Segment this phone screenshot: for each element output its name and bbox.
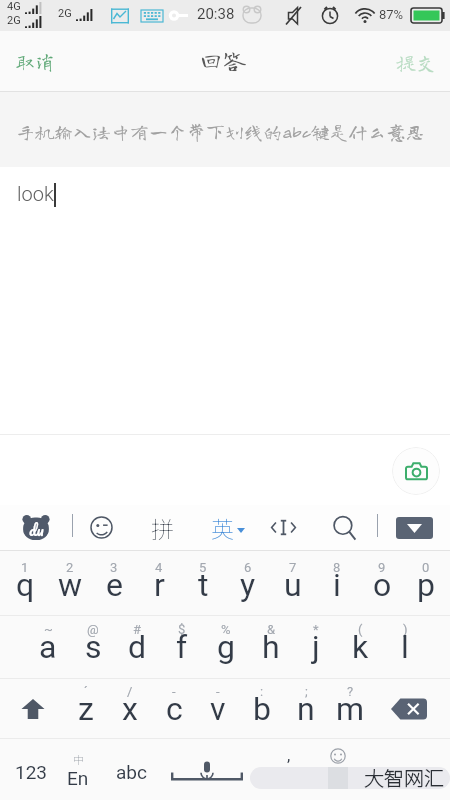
button[interactable]: Emoji [79, 505, 123, 550]
staticText: h [262, 628, 280, 666]
staticText: b [253, 690, 271, 728]
button[interactable]: % [204, 616, 248, 678]
staticText: 大智网汇 [364, 763, 444, 792]
button[interactable]: 2 [48, 551, 92, 615]
button[interactable]: ; [284, 679, 328, 738]
staticText: - [216, 684, 220, 699]
button[interactable]: 取消 [0, 31, 74, 92]
staticText: 0 [422, 560, 430, 575]
staticText: m [336, 690, 365, 728]
button[interactable]: Add photo [392, 447, 440, 495]
button[interactable]: ) [383, 616, 427, 678]
button[interactable]: - [152, 679, 196, 738]
staticText: a [39, 628, 57, 666]
staticText: - [172, 684, 176, 699]
staticText: g [217, 628, 235, 666]
button[interactable]: Hide keyboard [392, 505, 436, 550]
button[interactable]: 英 [211, 505, 259, 550]
staticText: 87% [379, 7, 404, 22]
staticText: @ [87, 622, 99, 637]
staticText: y [240, 566, 256, 604]
staticText: 取消 [15, 51, 55, 71]
button[interactable]: @ [71, 616, 115, 678]
staticText: 6 [244, 560, 252, 575]
staticText: 提交 [396, 52, 436, 72]
staticText: i [333, 566, 341, 604]
staticText: t [198, 566, 209, 604]
staticText: % [221, 622, 231, 637]
staticText: ? [347, 684, 354, 699]
staticText: l [401, 628, 409, 666]
staticText: u [284, 566, 302, 604]
staticText: p [417, 566, 435, 604]
staticText: 2G [7, 14, 21, 27]
staticText: o [373, 566, 392, 604]
button[interactable]: Search [323, 505, 367, 550]
button[interactable]: 0 [404, 551, 448, 615]
button[interactable]: 中 [55, 739, 101, 800]
staticText: s [85, 628, 102, 666]
staticText: 123 [15, 761, 48, 783]
button[interactable]: ~ [26, 616, 70, 678]
button[interactable]: 5 [181, 551, 225, 615]
staticText: j [312, 628, 320, 666]
button[interactable]: 4 [137, 551, 181, 615]
staticText: & [267, 622, 276, 637]
button[interactable]: 提交 [380, 31, 450, 92]
button[interactable]: - [196, 679, 240, 738]
staticText: c [166, 690, 183, 728]
staticText: 3 [110, 560, 118, 575]
button[interactable]: Space [162, 739, 252, 800]
button[interactable]: * [294, 616, 338, 678]
staticText: En [67, 767, 89, 789]
button[interactable]: Backspace [383, 679, 435, 738]
staticText: 7 [289, 560, 297, 575]
staticText: q [16, 566, 35, 604]
button[interactable]: , [262, 739, 316, 800]
button[interactable]: & [249, 616, 293, 678]
staticText: 2 [66, 560, 74, 575]
staticText: ˊ [84, 684, 88, 699]
button[interactable]: Emoji [316, 739, 360, 800]
button[interactable]: # [115, 616, 159, 678]
staticText: $ [178, 622, 186, 637]
staticText: ) [403, 622, 408, 637]
staticText: ( [358, 622, 363, 637]
button[interactable]: / [108, 679, 152, 738]
staticText: 20:38 [197, 5, 235, 23]
button[interactable]: abc [103, 739, 159, 800]
button[interactable]: Enter [250, 767, 450, 789]
staticText: abc [116, 761, 147, 783]
button[interactable]: Baidu input [13, 505, 59, 550]
staticText: du [29, 516, 44, 541]
staticText: 手机输入法中有一个带下划线的abc键是什么意思 [16, 122, 425, 141]
button[interactable]: 8 [315, 551, 359, 615]
staticText: r [154, 566, 165, 604]
button[interactable]: 拼 [140, 505, 184, 550]
button[interactable]: 123 [2, 739, 60, 800]
button[interactable]: 3 [92, 551, 136, 615]
button[interactable]: 9 [360, 551, 404, 615]
button[interactable]: ? [328, 679, 372, 738]
staticText: d [128, 628, 147, 666]
button[interactable]: : [240, 679, 284, 738]
button[interactable]: 6 [226, 551, 270, 615]
staticText: v [210, 690, 226, 728]
button[interactable]: ˊ [64, 679, 108, 738]
staticText: w [58, 566, 83, 604]
button[interactable]: ( [338, 616, 382, 678]
button[interactable]: Shift [11, 679, 55, 738]
button[interactable]: 1 [3, 551, 47, 615]
staticText: 2G [58, 7, 72, 20]
staticText: * [313, 622, 319, 637]
staticText: / [127, 684, 133, 699]
button[interactable]: Move cursor [261, 505, 305, 550]
staticText: f [176, 628, 188, 666]
staticText: k [352, 628, 369, 666]
button[interactable]: 7 [271, 551, 315, 615]
staticText: : [260, 684, 264, 699]
staticText: n [297, 690, 315, 728]
button[interactable]: $ [160, 616, 204, 678]
staticText: 9 [378, 560, 386, 575]
staticText: 拼 [151, 511, 174, 544]
